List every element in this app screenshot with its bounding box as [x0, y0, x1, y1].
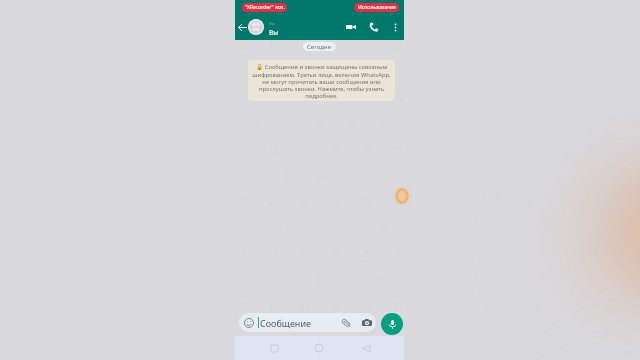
staticText: Сообщение [260, 317, 311, 329]
button[interactable]: Использование [354, 3, 399, 12]
staticText: Сегодня [307, 43, 332, 51]
button[interactable]: 🔒 Сообщения и звонки защищены сквозным ш… [248, 60, 395, 101]
staticText: 🔒 Сообщения и звонки защищены сквозным ш… [252, 63, 391, 99]
staticText: Использование [358, 4, 396, 11]
staticText: Вы [269, 28, 279, 37]
button[interactable]: Profile photo [248, 19, 264, 35]
button[interactable]: Recent apps [266, 340, 282, 356]
button[interactable]: Record voice message [381, 313, 403, 335]
staticText: "XRecorder" исп. [245, 4, 285, 11]
button[interactable]: Back [236, 21, 248, 33]
button[interactable]: Сегодня [303, 42, 336, 51]
button[interactable]: Voice call [367, 20, 381, 34]
button[interactable]: Home [311, 340, 327, 356]
button[interactable]: Attach [340, 317, 352, 329]
button[interactable]: Camera [361, 317, 373, 329]
button[interactable]: Video call [344, 20, 358, 34]
button[interactable]: Вы [268, 15, 348, 40]
button[interactable]: Emoji [243, 317, 255, 329]
staticText: Вы [269, 21, 275, 27]
button[interactable]: "XRecorder" исп. [242, 3, 287, 12]
button[interactable]: More options [388, 20, 402, 34]
button[interactable]: Back [358, 340, 374, 356]
button[interactable]: Emoji [239, 313, 376, 332]
